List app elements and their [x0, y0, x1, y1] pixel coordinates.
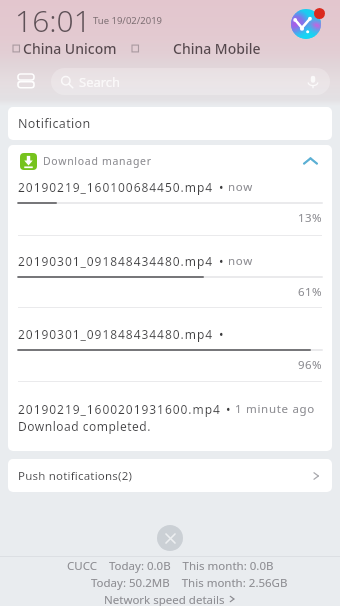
button[interactable]: Menu [18, 73, 34, 89]
button[interactable]: Notification [8, 107, 332, 140]
button[interactable]: Push notifications(2) [8, 459, 332, 492]
button[interactable]: Search [51, 68, 330, 95]
staticText: • [219, 179, 224, 195]
staticText: CUCC Today: 0.0B This month: 0.0B [67, 558, 274, 574]
staticText: Search [79, 73, 121, 91]
staticText: Push notifications(2) [18, 468, 311, 484]
button[interactable]: Network speed details [104, 592, 236, 606]
button[interactable]: Voice search [306, 75, 320, 89]
staticText: Tue 19/02/2019 [93, 14, 163, 27]
staticText: Download manager [43, 154, 152, 168]
staticText: 61% [18, 284, 322, 300]
staticText: 13% [18, 210, 322, 226]
staticText: Today: 50.2MB This month: 2.56GB [91, 575, 288, 591]
staticText: 96% [18, 357, 322, 373]
staticText: • [219, 326, 224, 342]
staticText: 16:01 [15, 0, 91, 41]
staticText: Network speed details [104, 592, 225, 606]
staticText: now [228, 179, 253, 195]
button[interactable]: Clear all notifications [157, 525, 183, 551]
staticText: 20190219_1600201931600.mp4 [18, 401, 221, 417]
staticText: 20190219_160100684450.mp4 [18, 179, 214, 195]
staticText: • [226, 401, 231, 417]
staticText: now [228, 253, 253, 269]
button[interactable]: Collapse [302, 153, 319, 170]
staticText: China Unicom [23, 39, 117, 58]
staticText: China Mobile [173, 39, 261, 58]
staticText: • [219, 253, 224, 269]
staticText: Notification [18, 115, 91, 132]
staticText: 1 minute ago [235, 401, 316, 417]
staticText: Download completed. [18, 418, 151, 434]
staticText: 20190301_091848434480.mp4 [18, 253, 214, 269]
staticText: 20190301_091848434480.mp4 [18, 326, 214, 342]
